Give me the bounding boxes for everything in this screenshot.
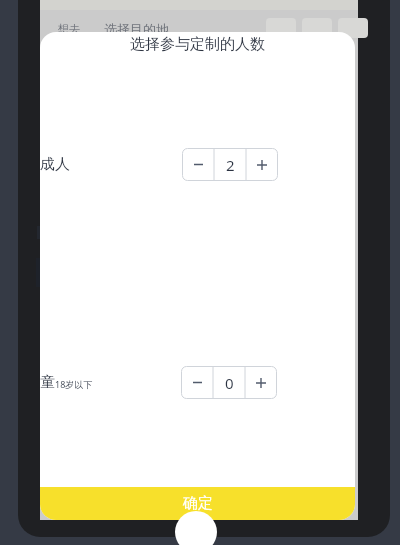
button[interactable]: 确定	[40, 487, 355, 520]
staticText: 选择目的地	[104, 21, 169, 37]
staticText: 确定	[183, 494, 213, 513]
staticText: 品	[345, 227, 356, 241]
button[interactable]: Increase	[245, 366, 277, 399]
staticText: 18岁以下	[55, 378, 93, 390]
button[interactable]: Increase	[246, 148, 278, 181]
staticText: 0	[225, 373, 234, 393]
button[interactable]: Decrease	[181, 366, 213, 399]
staticText: 2	[226, 155, 235, 175]
staticText: 选择参与定制的人数	[40, 35, 355, 54]
staticText: 想去	[58, 22, 80, 36]
staticText: 成人	[40, 155, 70, 174]
staticText: 童	[40, 373, 55, 392]
button[interactable]: Decrease	[182, 148, 214, 181]
